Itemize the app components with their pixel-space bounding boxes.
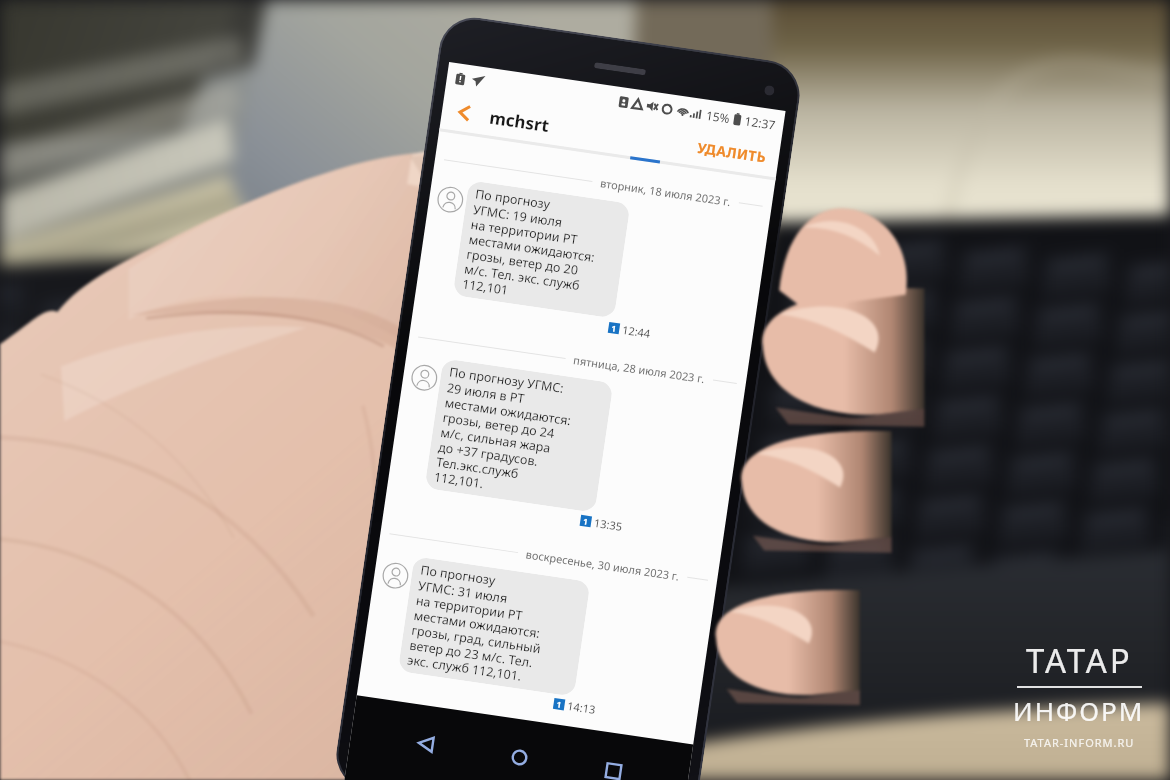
staticText: 13:35 [593,515,624,534]
button[interactable]: УДАЛИТЬ [683,128,781,176]
staticText: 12:44 [621,322,652,341]
staticText: 1 [556,698,562,710]
button[interactable]: Recents [591,748,636,780]
staticText: 12:37 [744,112,777,133]
staticText: УДАЛИТЬ [696,138,768,167]
button[interactable]: По прогнозу УГМС: 29 июля в РТ местами о… [424,358,613,513]
staticText: По прогнозу УГМС: 31 июля на территории … [406,561,551,687]
button[interactable]: По прогнозу УГМС: 31 июля на территории … [398,556,591,697]
staticText: mchsrt [488,106,551,137]
staticText: воскресенье, 30 июля 2023 г. [525,546,680,584]
staticText: TATAR-INFORM.RU [1024,735,1135,750]
staticText: вторник, 18 июля 2023 г. [599,175,732,209]
staticText: пятница, 28 июля 2023 г. [572,352,706,386]
button[interactable]: Back [448,96,482,130]
staticText: По прогнозу УГМС: 29 июля в РТ местами о… [433,363,577,504]
staticText: По прогнозу УГМС: 19 июля на территории … [461,185,603,311]
button[interactable]: Back [403,721,448,766]
staticText: 1 [611,322,617,334]
staticText: ИНФОРМ [1013,693,1145,728]
staticText: 15% [705,107,731,126]
button[interactable]: По прогнозу УГМС: 19 июля на территории … [453,180,631,318]
staticText: ТАТАР [1026,638,1133,683]
button[interactable]: Home [497,735,542,780]
staticText: 14:13 [566,698,597,717]
staticText: 1 [582,515,589,527]
